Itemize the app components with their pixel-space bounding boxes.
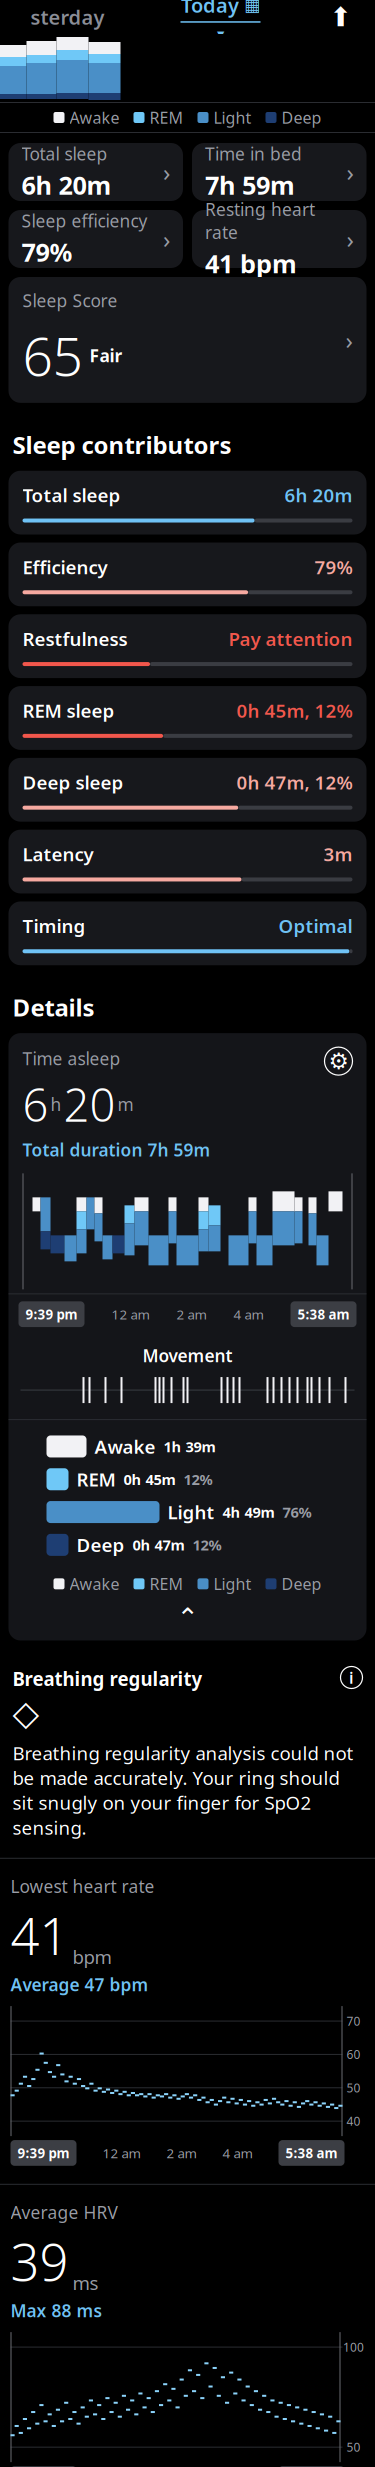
button[interactable]: Latency [8,830,366,893]
staticText: 79% [314,554,352,579]
staticText: 4 am [233,1305,263,1323]
button[interactable]: Total sleep [8,471,366,534]
staticText: Sleep Score [22,289,117,312]
staticText: 0h 47m [132,1535,184,1555]
staticText: Time in bed [205,142,302,165]
staticText: › [163,156,170,188]
staticText: 60 [346,2046,360,2062]
staticText: 41 bpm [205,247,297,280]
staticText: bpm [72,1944,111,1969]
staticText: › [163,223,170,255]
button[interactable]: Total sleep [8,143,183,201]
staticText: 12 am [111,1305,149,1323]
staticText: 0h 45m [123,1469,175,1489]
staticText: 79% [21,235,72,269]
staticText: Breathing regularity analysis could not … [12,1741,353,1840]
button[interactable]: Deep sleep [8,758,366,822]
staticText: REM [149,107,183,128]
staticText: Efficiency [22,554,107,579]
staticText: 12% [192,1535,221,1555]
staticText: Light [167,1500,214,1524]
staticText: Deep [76,1532,124,1557]
button[interactable]: Information [340,1666,362,1688]
staticText: Details [12,991,94,1023]
staticText: 4 am [222,2144,252,2162]
staticText: ▦ [244,0,260,15]
staticText: sterday [30,4,104,30]
staticText: Total sleep [21,142,107,165]
button[interactable]: Share [318,0,362,34]
staticText: 12 am [102,2144,140,2162]
staticText: › [345,324,352,356]
staticText: 12% [183,1469,212,1489]
staticText: 6h 20m [21,168,111,202]
staticText: Resting heart rate [205,198,315,244]
staticText: 41 [10,1902,68,1969]
button[interactable]: Sleep efficiency [8,210,183,268]
staticText: 50 [346,2080,360,2096]
button[interactable]: Chart options [324,1047,352,1075]
staticText: Awake [69,107,119,128]
staticText: Sleep contributors [12,429,231,461]
staticText: 0h 47m, 12% [236,770,352,795]
staticText: Total sleep [22,483,120,507]
staticText: 76% [282,1502,311,1522]
staticText: Breathing regularity [12,1666,202,1691]
staticText: 2 am [166,2144,196,2162]
staticText: Latency [22,842,93,866]
staticText: 65 [22,320,82,391]
button[interactable]: Timing [8,901,366,965]
button[interactable]: Sleep Score [8,277,366,403]
staticText: ms [72,2270,98,2295]
staticText: ◇ [12,1693,39,1733]
staticText: ⌃ [176,1602,198,1633]
staticText: Pay attention [228,626,352,651]
staticText: 5:38 am [297,1305,349,1323]
staticText: 7h 59m [205,168,295,202]
staticText: 39 [10,2228,68,2295]
button[interactable]: Resting heart rate [192,210,366,268]
staticText: REM sleep [22,698,114,723]
staticText: 40 [346,2113,360,2129]
staticText: 0h 45m, 12% [236,698,352,723]
staticText: Timing [22,913,85,938]
staticText: Deep [281,1573,321,1594]
staticText: REM [76,1467,115,1492]
staticText: 20 [63,1074,115,1134]
staticText: REM [149,1573,183,1594]
staticText: Light [213,1573,251,1594]
staticText: i [349,1667,354,1688]
button[interactable]: sterday [12,0,122,38]
staticText: Optimal [278,913,352,938]
button[interactable]: Collapse details [157,1600,217,1634]
button[interactable]: Efficiency [8,542,366,606]
button[interactable]: Time in bed [192,143,366,201]
staticText: 4h 49m [222,1502,274,1522]
staticText: ⬆ [329,2,351,32]
staticText: › [346,156,353,188]
staticText: 1h 39m [163,1437,215,1456]
staticText: ▾ [217,26,224,42]
button[interactable]: REM sleep [8,686,366,750]
staticText: Awake [69,1573,119,1594]
staticText: 6 [22,1074,48,1134]
staticText: 9:39 pm [17,2144,69,2162]
staticText: 9:39 pm [25,1305,77,1323]
staticText: Awake [94,1434,155,1459]
staticText: ⚙ [328,1048,348,1074]
staticText: › [346,223,353,255]
staticText: Average 47 bpm [10,1973,148,1996]
button[interactable]: Restfulness [8,614,366,678]
staticText: 70 [346,2013,360,2029]
staticText: Fair [89,344,122,367]
staticText: Total duration 7h 59m [22,1138,210,1161]
button[interactable]: Today [180,0,260,46]
staticText: Average HRV [10,2201,117,2224]
staticText: Restfulness [22,626,127,651]
staticText: m [117,1093,133,1116]
staticText: 50 [346,2439,360,2455]
staticText: h [50,1093,61,1116]
staticText: 6h 20m [284,483,352,507]
staticText: Deep sleep [22,770,123,795]
staticText: Sleep efficiency [21,209,147,232]
